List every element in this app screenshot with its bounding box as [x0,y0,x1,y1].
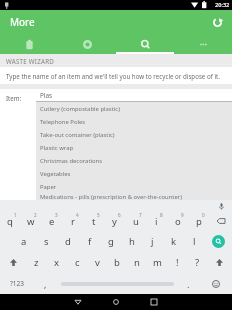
staticText: g [108,235,114,248]
button[interactable]: o [167,211,188,231]
button[interactable]: ? [187,252,207,273]
button[interactable]: z [26,252,47,273]
button[interactable]: Cutlery (compostable plastic) [36,102,232,115]
staticText: l [193,235,196,248]
staticText: ! [176,256,179,269]
staticText: Christmas decorations [40,157,103,165]
staticText: p [196,215,202,228]
button[interactable]: u [125,211,146,231]
staticText: m [153,256,162,269]
button[interactable]: r [62,211,83,231]
button[interactable]: q [0,211,20,231]
button[interactable]: Backspace [209,211,232,231]
staticText: 8 [160,212,163,218]
staticText: 2 [34,212,37,218]
button[interactable]: Paper [36,180,232,193]
staticText: e [49,215,55,228]
button[interactable]: f [79,231,100,252]
button[interactable]: Vegetables [36,167,232,180]
staticText: 3 [55,212,58,218]
staticText: 1 [14,212,17,218]
button[interactable]: v [87,252,107,273]
staticText: , [44,278,47,290]
staticText: z [34,256,39,269]
button[interactable]: s [35,231,57,252]
button[interactable]: p [188,211,209,231]
staticText: v [95,256,100,269]
button[interactable]: Home [105,294,127,310]
staticText: . [187,278,190,290]
staticText: x [54,256,60,269]
staticText: 0 [202,212,205,218]
button[interactable]: Christmas decorations [36,154,232,167]
button[interactable]: x [47,252,67,273]
button[interactable]: w [20,211,41,231]
button[interactable]: Tasks [0,34,58,54]
button[interactable]: More [174,34,232,54]
staticText: 7 [139,212,142,218]
button[interactable]: Voice input [216,201,226,211]
staticText: s [44,235,49,248]
button[interactable]: a [13,231,35,252]
staticText: ? [195,256,200,269]
staticText: u [133,215,139,228]
button[interactable]: c [67,252,87,273]
button[interactable]: d [57,231,79,252]
staticText: Type the name of an item and we'll tell … [6,72,220,80]
button[interactable]: j [142,231,163,252]
staticText: q [7,215,13,228]
button[interactable]: b [107,252,127,273]
button[interactable]: Take-out container (plastic) [36,128,232,141]
button[interactable]: Emoji [199,273,232,294]
button[interactable]: ?123 [0,273,34,294]
button[interactable]: Plas [36,89,232,102]
staticText: t [92,215,96,228]
button[interactable]: Search [205,231,232,252]
button[interactable]: Recycle [58,34,116,54]
button[interactable]: Medications - pills (prescription & over… [36,193,232,200]
staticText: b [114,256,120,269]
staticText: Plas [40,91,53,100]
staticText: w [27,215,35,228]
staticText: f [88,235,92,248]
staticText: n [134,256,140,269]
button[interactable]: e [41,211,62,231]
button[interactable]: t [83,211,104,231]
button[interactable]: Period [177,273,199,294]
button[interactable]: Telephone Poles [36,115,232,128]
button[interactable]: Shift right [207,252,232,273]
staticText: Telephone Poles [40,118,86,126]
staticText: Take-out container (plastic) [40,131,115,139]
button[interactable]: Back [67,294,89,310]
button[interactable]: m [147,252,167,273]
staticText: k [171,235,177,248]
button[interactable]: k [163,231,184,252]
button[interactable]: l [184,231,205,252]
staticText: WASTE WIZARD [6,57,55,65]
button[interactable]: n [127,252,147,273]
button[interactable]: Refresh [207,12,227,32]
staticText: h [129,235,135,248]
button[interactable]: y [104,211,125,231]
staticText: Cutlery (compostable plastic) [40,105,120,113]
button[interactable]: Shift [0,252,26,273]
button[interactable]: Comma [34,273,57,294]
staticText: 9 [181,212,184,218]
staticText: Plastic wrap [40,144,74,152]
button[interactable]: Plastic wrap [36,141,232,154]
staticText: a [21,235,27,248]
button[interactable]: Space [57,273,177,294]
button[interactable]: i [146,211,167,231]
button[interactable]: Waste Wizard search [116,34,174,54]
staticText: Medications - pills (prescription & over… [40,193,182,200]
staticText: i [155,215,158,228]
staticText: ?123 [10,279,24,288]
staticText: d [65,235,71,248]
button[interactable]: ! [167,252,187,273]
button[interactable]: h [121,231,142,252]
button[interactable]: Recent apps [143,294,165,310]
staticText: More [10,15,35,29]
button[interactable]: g [100,231,121,252]
staticText: Paper [40,183,57,191]
staticText: y [112,215,117,228]
